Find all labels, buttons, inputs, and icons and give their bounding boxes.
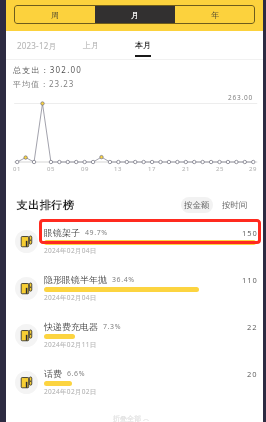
staticText: 2024年02月11日 <box>44 340 97 349</box>
button[interactable]: 眼镜架子 <box>0 221 266 257</box>
staticText: 2024年02月02日 <box>44 387 97 396</box>
staticText: 平均值：23.23 <box>13 78 75 89</box>
staticText: 05 <box>47 165 55 173</box>
staticText: 按时间 <box>222 200 248 211</box>
staticText: 隐形眼镜半年抛 <box>44 274 107 285</box>
button[interactable]: 本月 <box>133 38 153 52</box>
staticText: 年 <box>211 10 219 20</box>
button[interactable]: 按金额 <box>181 197 213 213</box>
staticText: 6.6% <box>67 369 86 379</box>
staticText: 263.00 <box>228 93 254 102</box>
button[interactable]: 上月 <box>83 40 99 50</box>
staticText: 49.7% <box>85 228 108 238</box>
staticText: 2024年02月04日 <box>44 246 97 255</box>
staticText: 快递费充电器 <box>44 321 98 332</box>
staticText: 36.4% <box>112 275 135 285</box>
button[interactable]: 月 <box>95 5 175 24</box>
staticText: 月 <box>131 10 139 20</box>
staticText: 22 <box>247 322 258 332</box>
staticText: 01 <box>13 165 21 173</box>
button[interactable]: 年 <box>175 5 255 24</box>
staticText: 17 <box>148 165 156 173</box>
staticText: 话费 <box>44 368 62 379</box>
button[interactable]: 2023-12月 <box>17 40 57 51</box>
button[interactable]: 按时间 <box>219 197 251 213</box>
staticText: 13 <box>114 165 122 173</box>
staticText: 折叠全部 ︿ <box>113 414 150 422</box>
button[interactable]: 快递费充电器 <box>0 315 266 351</box>
staticText: 150 <box>242 228 258 238</box>
staticText: 21 <box>182 165 190 173</box>
button[interactable]: 话费 <box>0 362 266 398</box>
staticText: 29 <box>249 165 257 173</box>
button[interactable]: 周 <box>14 5 95 24</box>
staticText: 110 <box>242 275 258 285</box>
button[interactable]: 隐形眼镜半年抛 <box>0 268 266 304</box>
staticText: 总支出：302.00 <box>13 64 83 75</box>
staticText: 按金额 <box>184 200 210 211</box>
staticText: 周 <box>51 10 59 20</box>
staticText: 本月 <box>135 40 151 50</box>
staticText: 7.3% <box>103 322 122 332</box>
staticText: 09 <box>81 165 89 173</box>
staticText: 2024年02月04日 <box>44 293 97 302</box>
staticText: 20 <box>247 369 258 379</box>
staticText: 25 <box>216 165 224 173</box>
staticText: 眼镜架子 <box>44 227 80 238</box>
staticText: 支出排行榜 <box>16 198 74 212</box>
